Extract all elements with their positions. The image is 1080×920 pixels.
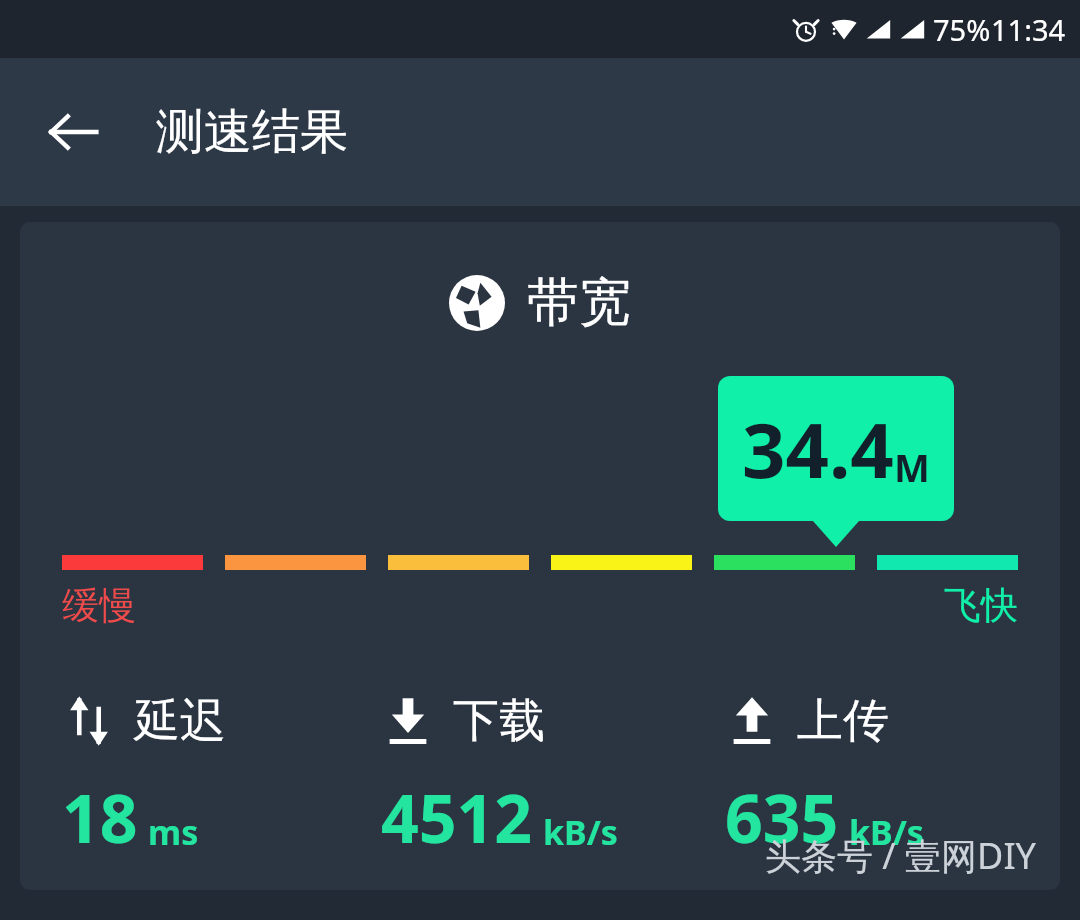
button[interactable]: 上传 [725,692,1018,862]
staticText: 34.4 [742,397,894,501]
staticText: kB/s [849,809,924,855]
staticText: kB/s [543,809,618,855]
staticText: 飞快 [540,582,1018,629]
button[interactable]: 下载 [381,692,725,862]
staticText: 11:34 [991,10,1066,49]
staticText: 下载 [453,692,545,750]
staticText: 635 [725,772,839,862]
staticText: 延迟 [134,692,226,750]
staticText: M [894,441,930,493]
button[interactable]: Back [34,93,112,171]
staticText: 测速结果 [156,102,348,162]
staticText: 75% [933,10,991,49]
staticText: 带宽 [527,270,631,336]
staticText: 缓慢 [62,582,540,629]
staticText: 头条号 / 壹网DIY [765,831,1036,880]
staticText: 18 [62,772,138,862]
staticText: 4512 [381,772,533,862]
button[interactable]: 延迟 [62,692,381,862]
staticText: 上传 [797,692,889,750]
staticText: ms [148,809,199,855]
